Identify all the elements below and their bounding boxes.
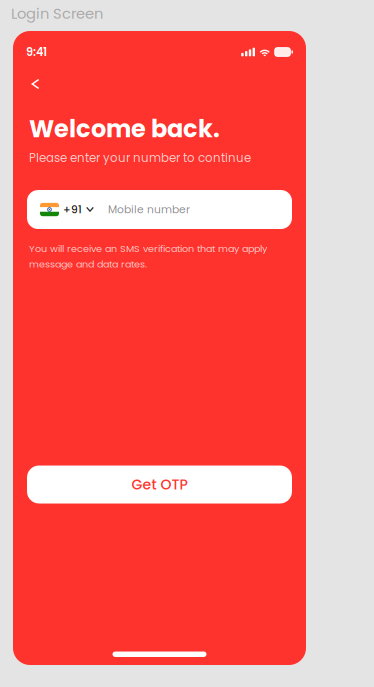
staticText: Please enter your number to continue [29, 150, 251, 166]
staticText: Mobile number [108, 202, 190, 217]
button[interactable]: Back [13, 71, 61, 97]
staticText: message and data rates. [29, 257, 147, 271]
button[interactable]: Country code, +91 [40, 202, 94, 217]
button[interactable]: Get OTP [27, 465, 292, 503]
staticText: Get OTP [131, 475, 187, 494]
staticText: Login Screen [11, 3, 103, 24]
staticText: +91 [63, 202, 82, 217]
staticText: 9:41 [26, 44, 47, 60]
staticText: You will receive an SMS verification tha… [29, 242, 267, 255]
staticText: Welcome back. [29, 112, 220, 146]
